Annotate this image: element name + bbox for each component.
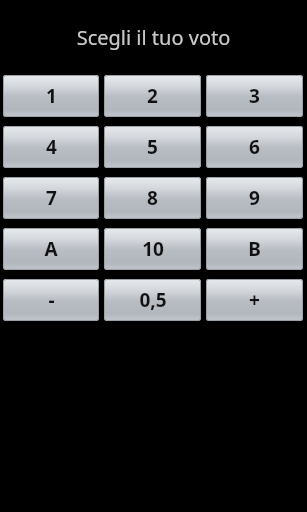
staticText: 3 [249,83,260,109]
staticText: + [249,287,260,313]
staticText: 9 [249,185,260,211]
staticText: 10 [142,236,164,262]
staticText: 1 [46,83,57,109]
button[interactable]: 7 [3,177,99,219]
button[interactable]: + [206,279,303,321]
button[interactable]: 4 [3,126,99,168]
button[interactable]: B [206,228,303,270]
staticText: - [48,287,55,313]
button[interactable]: 0,5 [104,279,201,321]
staticText: Scegli il tuo voto [0,24,307,51]
button[interactable]: - [3,279,99,321]
button[interactable]: 10 [104,228,201,270]
button[interactable]: 6 [206,126,303,168]
staticText: 8 [147,185,158,211]
button[interactable]: A [3,228,99,270]
staticText: A [44,236,58,262]
staticText: B [248,236,261,262]
button[interactable]: 1 [3,75,99,117]
button[interactable]: 3 [206,75,303,117]
staticText: 2 [147,83,158,109]
staticText: 4 [46,134,57,160]
staticText: 5 [147,134,158,160]
button[interactable]: 9 [206,177,303,219]
staticText: 7 [46,185,57,211]
button[interactable]: 8 [104,177,201,219]
staticText: 6 [249,134,260,160]
button[interactable]: 5 [104,126,201,168]
staticText: 0,5 [139,287,167,313]
button[interactable]: 2 [104,75,201,117]
